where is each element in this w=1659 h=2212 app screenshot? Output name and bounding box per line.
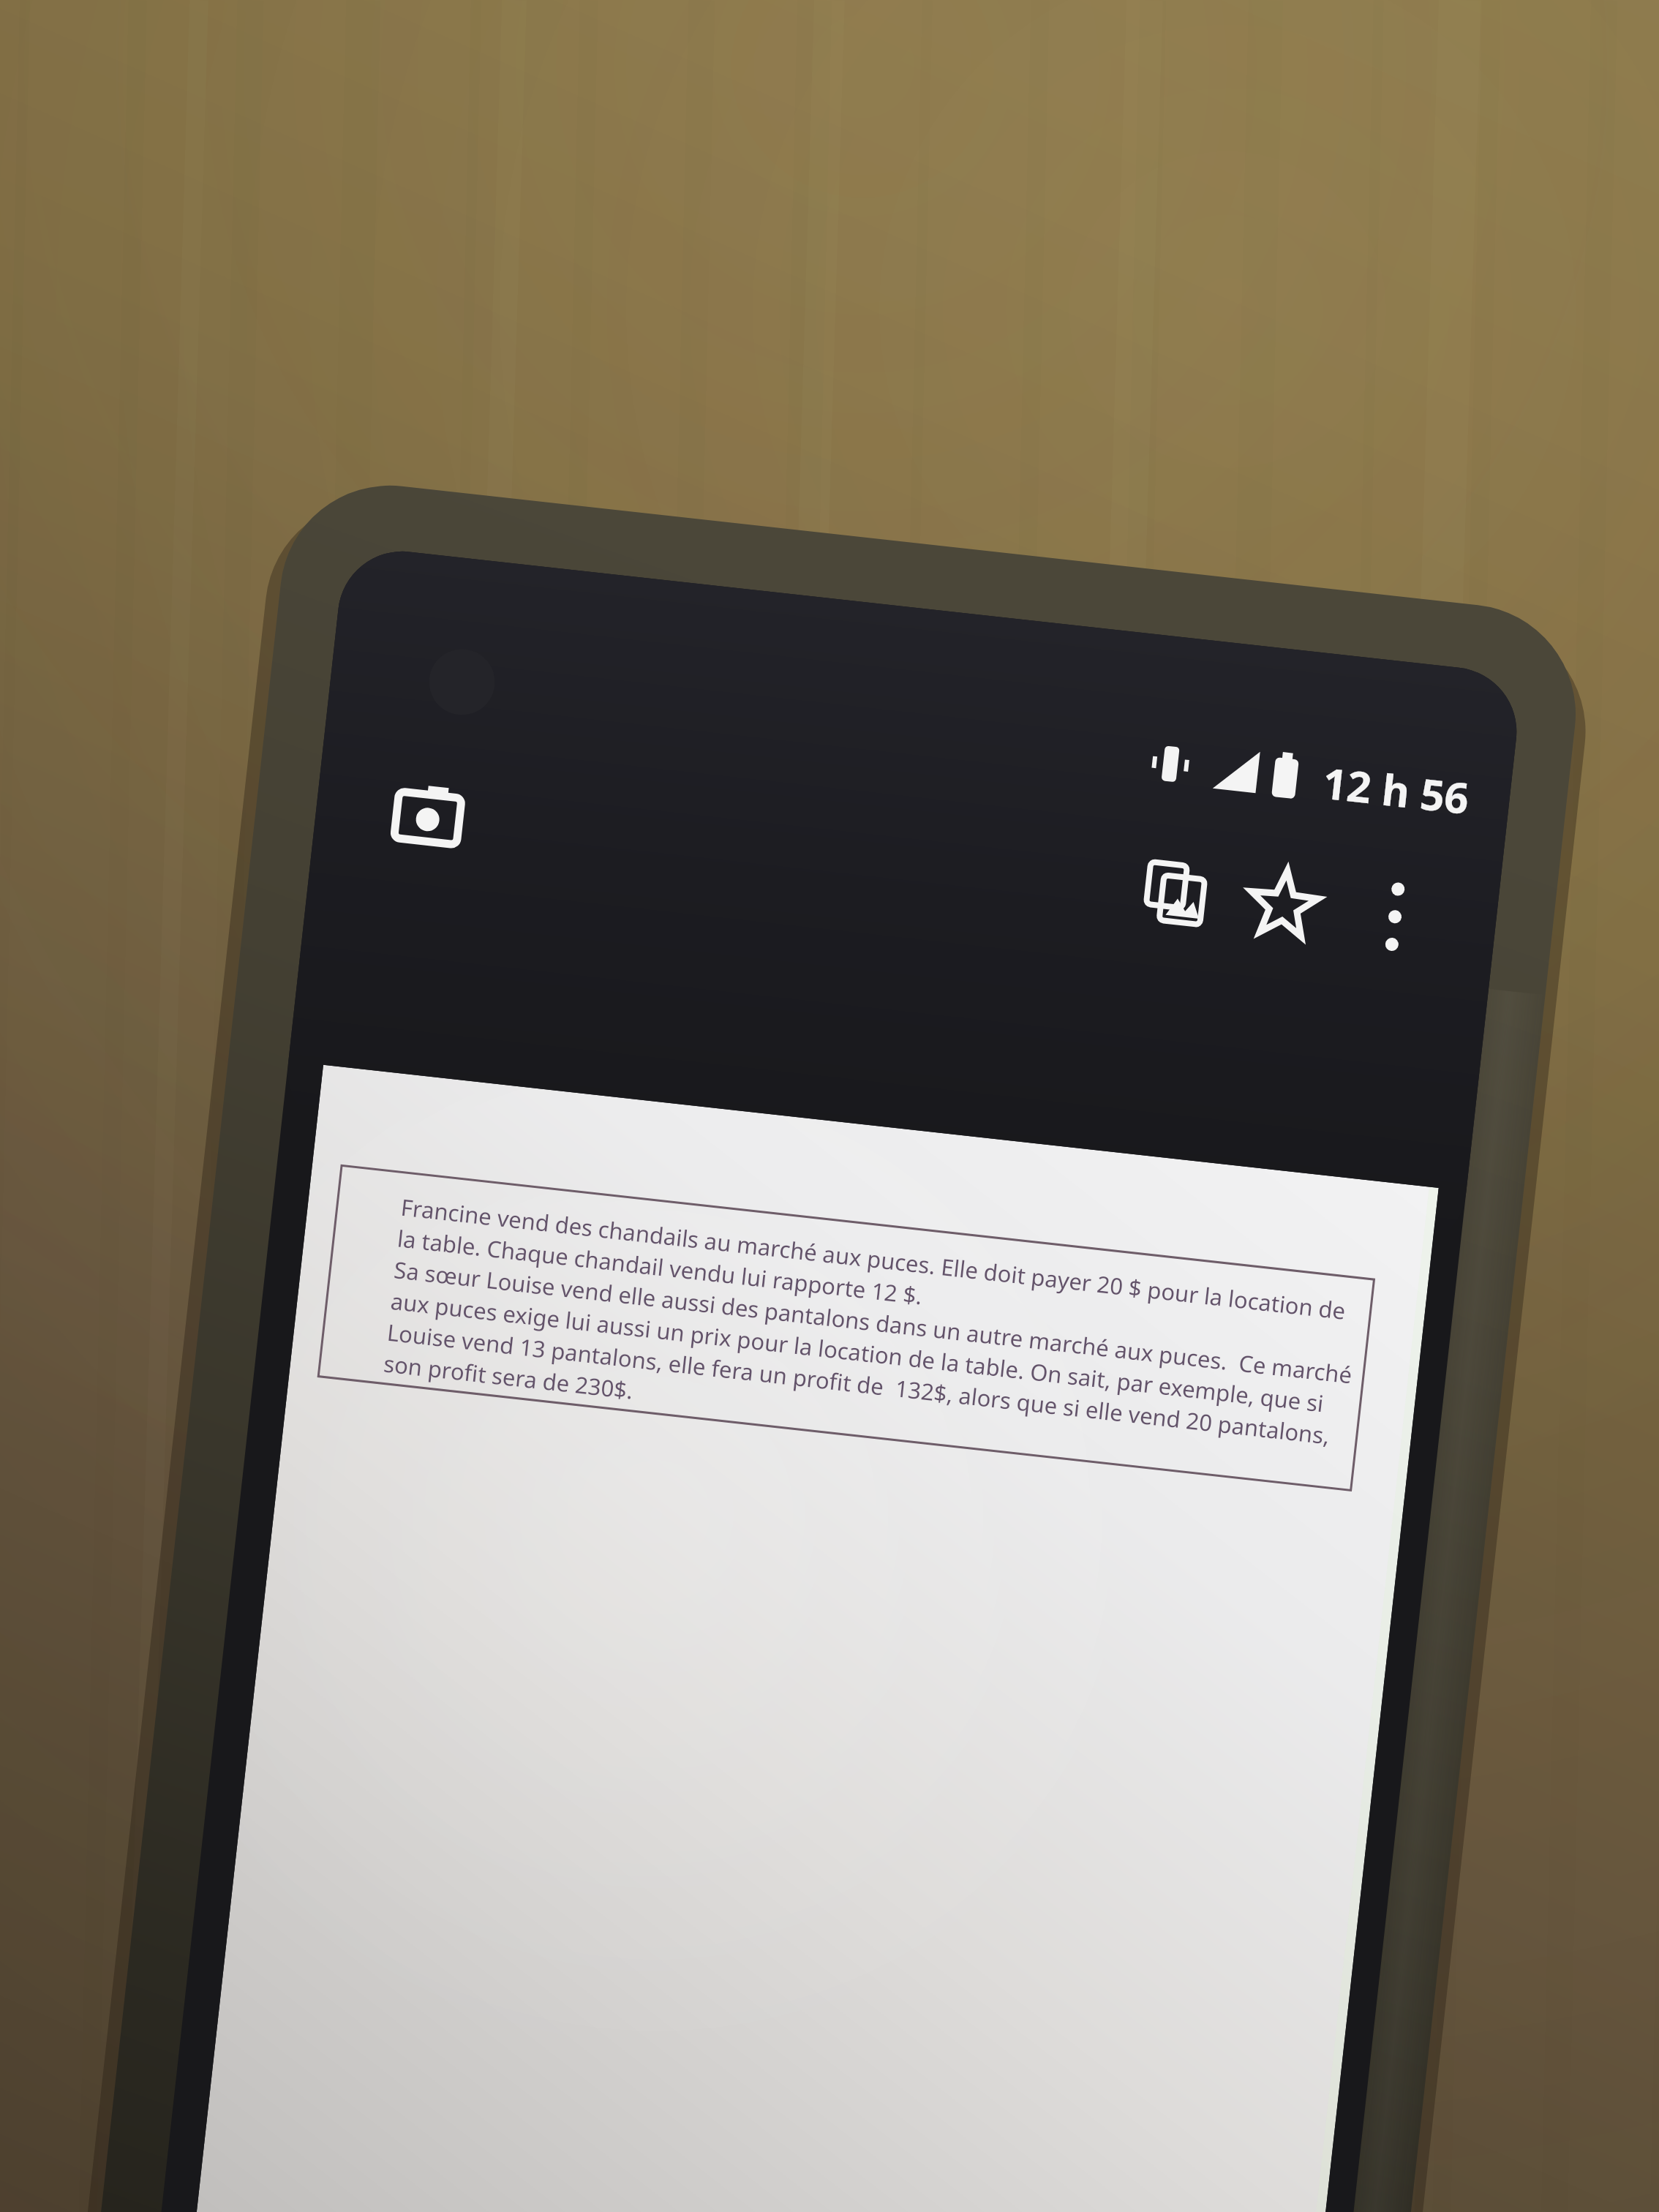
button[interactable]: All scans [1105,824,1240,958]
button[interactable]: More options [1329,851,1461,982]
button[interactable]: Take photo [358,748,497,887]
button[interactable]: Favourite [1216,838,1351,973]
